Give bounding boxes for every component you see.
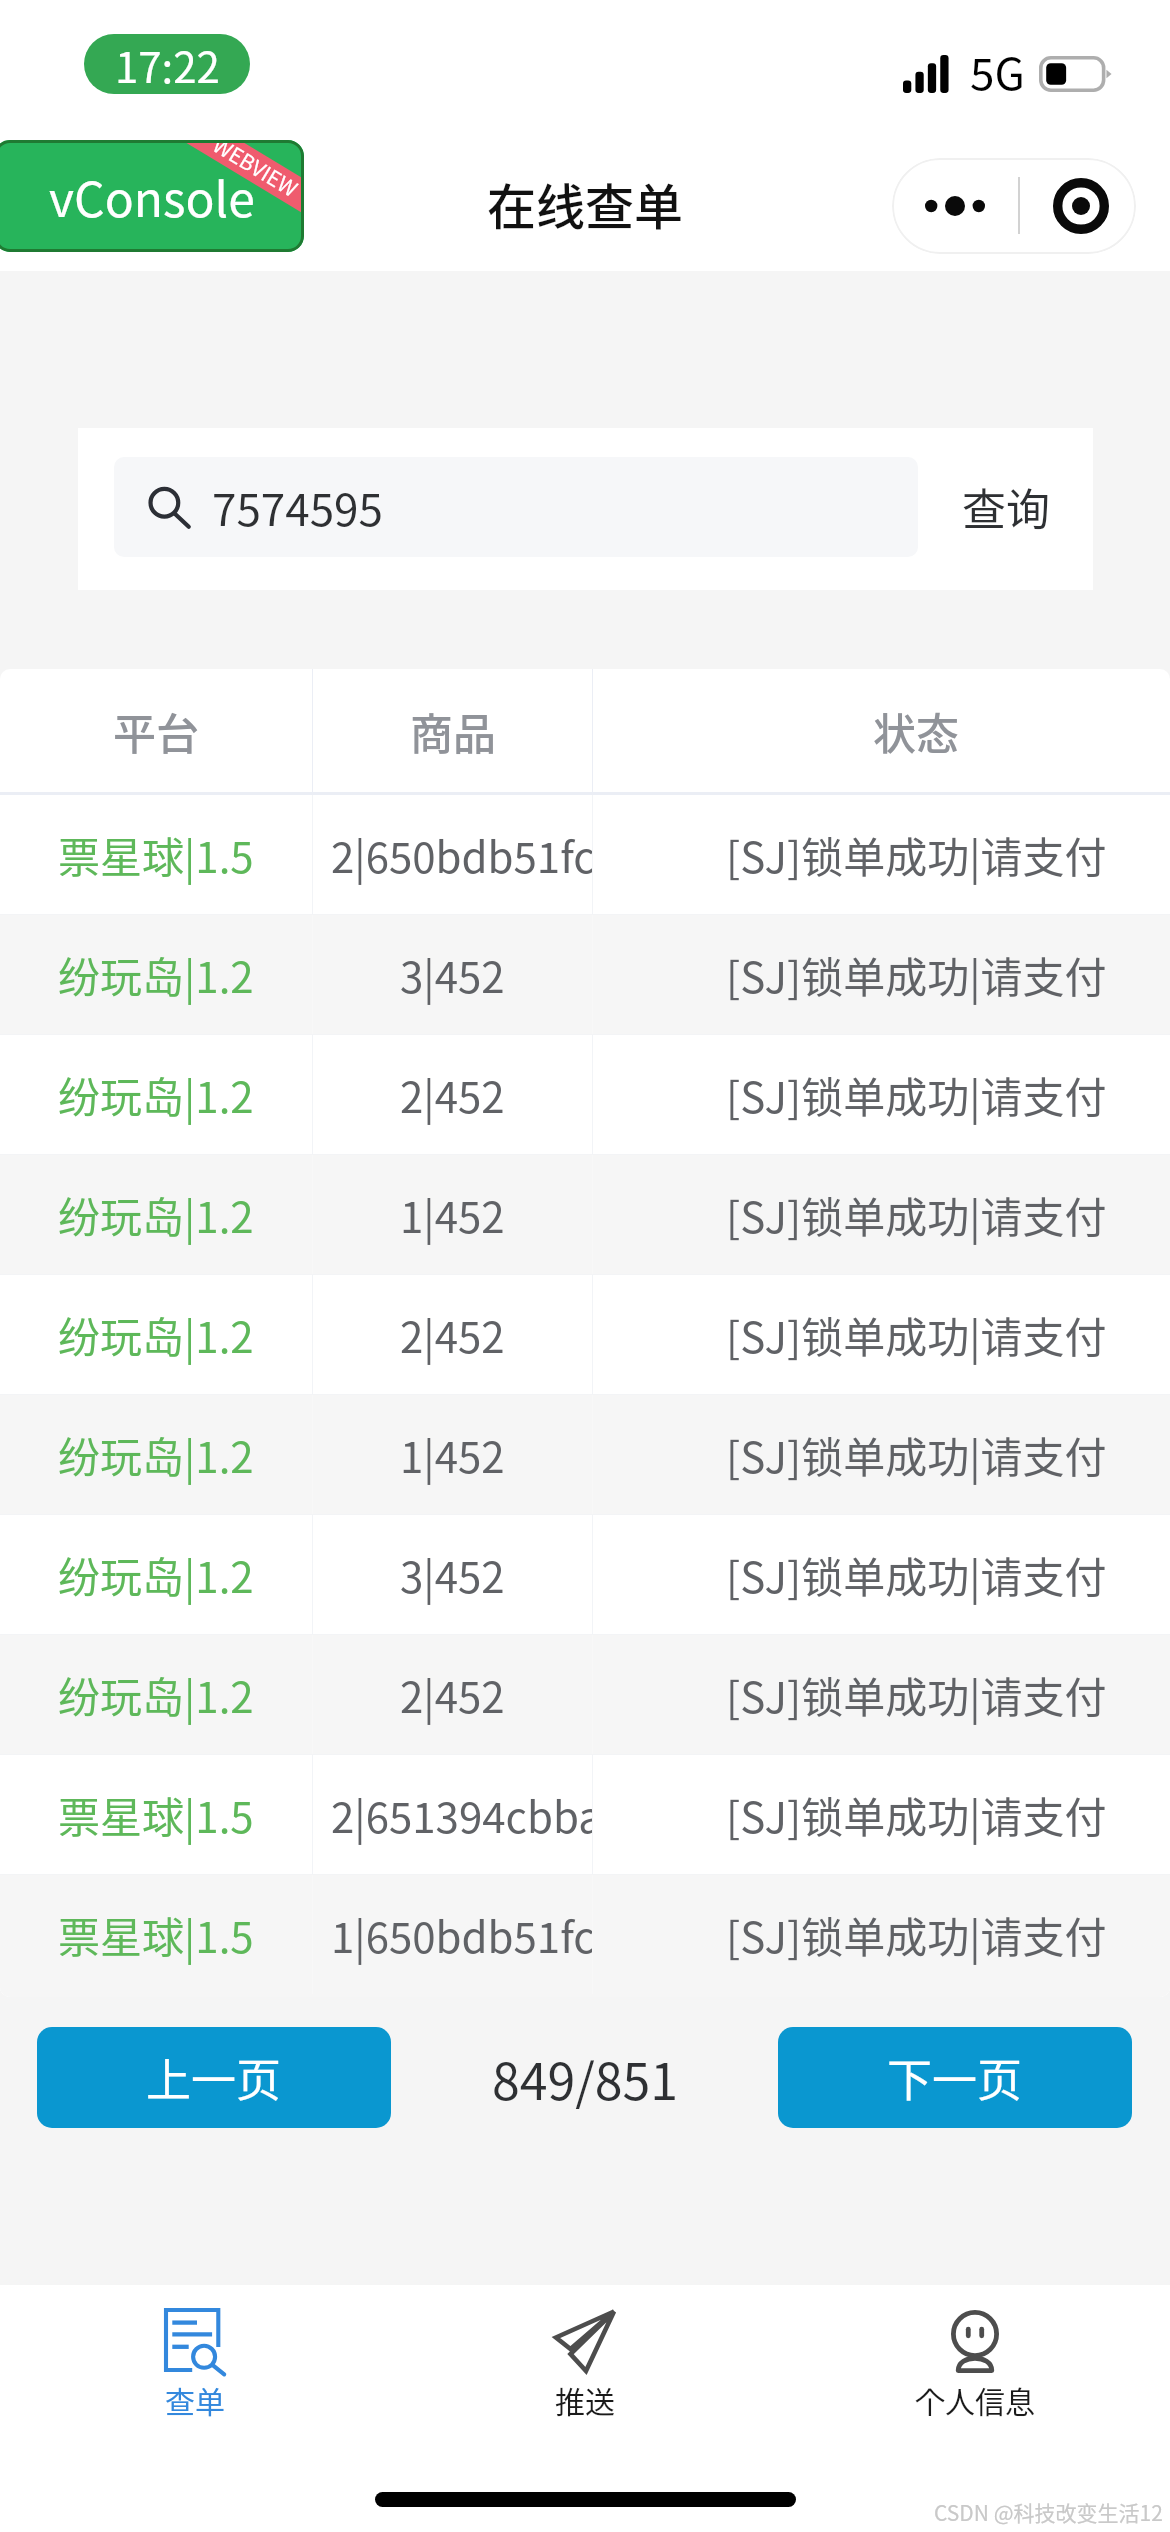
button[interactable]: 查询: [922, 457, 1089, 557]
staticText: 17:22: [115, 34, 220, 94]
staticText: [SJ]锁单成功|请支付: [726, 1304, 1107, 1365]
staticText: 3|452: [400, 944, 505, 1005]
staticText: 3|452: [400, 1544, 505, 1605]
staticText: 纷玩岛|1.2: [58, 1424, 254, 1485]
staticText: 纷玩岛|1.2: [58, 1664, 254, 1725]
staticText: 5G: [970, 39, 1025, 103]
staticText: [SJ]锁单成功|请支付: [726, 1784, 1107, 1845]
staticText: [SJ]锁单成功|请支付: [726, 1424, 1107, 1485]
button[interactable]: 纷玩岛|1.2: [0, 1155, 1170, 1274]
staticText: 平台: [113, 700, 199, 762]
staticText: 2|650bdb51fc5a: [331, 824, 592, 885]
button[interactable]: 上一页: [37, 2027, 391, 2128]
staticText: 商品: [410, 700, 496, 762]
staticText: [SJ]锁单成功|请支付: [726, 1904, 1107, 1965]
staticText: 2|651394cbba2f: [331, 1784, 592, 1845]
staticText: 1|452: [400, 1424, 505, 1485]
staticText: 849/851: [492, 2042, 679, 2114]
staticText: 纷玩岛|1.2: [58, 1064, 254, 1125]
button[interactable]: 个人信息: [780, 2285, 1170, 2465]
staticText: 票星球|1.5: [58, 1784, 254, 1845]
staticText: 纷玩岛|1.2: [58, 1544, 254, 1605]
button[interactable]: 纷玩岛|1.2: [0, 1635, 1170, 1754]
button[interactable]: 下一页: [778, 2027, 1132, 2128]
button[interactable]: 7574595: [114, 457, 918, 557]
button[interactable]: 推送: [390, 2285, 780, 2465]
staticText: 纷玩岛|1.2: [58, 1184, 254, 1245]
staticText: 个人信息: [915, 2378, 1035, 2421]
staticText: 1|650bdb51fc5a: [331, 1904, 592, 1965]
staticText: 2|452: [400, 1064, 505, 1125]
button[interactable]: 纷玩岛|1.2: [0, 915, 1170, 1034]
staticText: 查单: [165, 2378, 225, 2421]
staticText: 2|452: [400, 1664, 505, 1725]
button[interactable]: 票星球|1.5: [0, 1875, 1170, 1997]
staticText: CSDN @科技改变生活12: [934, 2497, 1163, 2527]
staticText: [SJ]锁单成功|请支付: [726, 1664, 1107, 1725]
staticText: [SJ]锁单成功|请支付: [726, 1184, 1107, 1245]
button[interactable]: 票星球|1.5: [0, 1755, 1170, 1874]
staticText: 下一页: [887, 2045, 1023, 2110]
staticText: WEBVIEW: [208, 140, 304, 203]
staticText: 票星球|1.5: [58, 1904, 254, 1965]
button[interactable]: 纷玩岛|1.2: [0, 1515, 1170, 1634]
staticText: 在线查单: [487, 168, 684, 239]
staticText: [SJ]锁单成功|请支付: [726, 1544, 1107, 1605]
button[interactable]: vConsole: [0, 140, 304, 252]
staticText: vConsole: [49, 161, 255, 231]
button[interactable]: More options: [892, 158, 1018, 254]
staticText: [SJ]锁单成功|请支付: [726, 944, 1107, 1005]
staticText: 状态: [873, 700, 959, 762]
button[interactable]: 纷玩岛|1.2: [0, 1275, 1170, 1394]
staticText: 1|452: [400, 1184, 505, 1245]
staticText: [SJ]锁单成功|请支付: [726, 1064, 1107, 1125]
staticText: 推送: [555, 2378, 615, 2421]
button[interactable]: Close mini program: [1025, 158, 1136, 254]
button[interactable]: 纷玩岛|1.2: [0, 1035, 1170, 1154]
staticText: 2|452: [400, 1304, 505, 1365]
button[interactable]: 纷玩岛|1.2: [0, 1395, 1170, 1514]
button[interactable]: 查单: [0, 2285, 390, 2465]
staticText: 查询: [962, 475, 1050, 539]
staticText: [SJ]锁单成功|请支付: [726, 824, 1107, 885]
staticText: 纷玩岛|1.2: [58, 1304, 254, 1365]
staticText: 纷玩岛|1.2: [58, 944, 254, 1005]
staticText: 票星球|1.5: [58, 824, 254, 885]
staticText: 上一页: [146, 2045, 282, 2110]
staticText: 7574595: [212, 475, 383, 539]
button[interactable]: 票星球|1.5: [0, 795, 1170, 914]
